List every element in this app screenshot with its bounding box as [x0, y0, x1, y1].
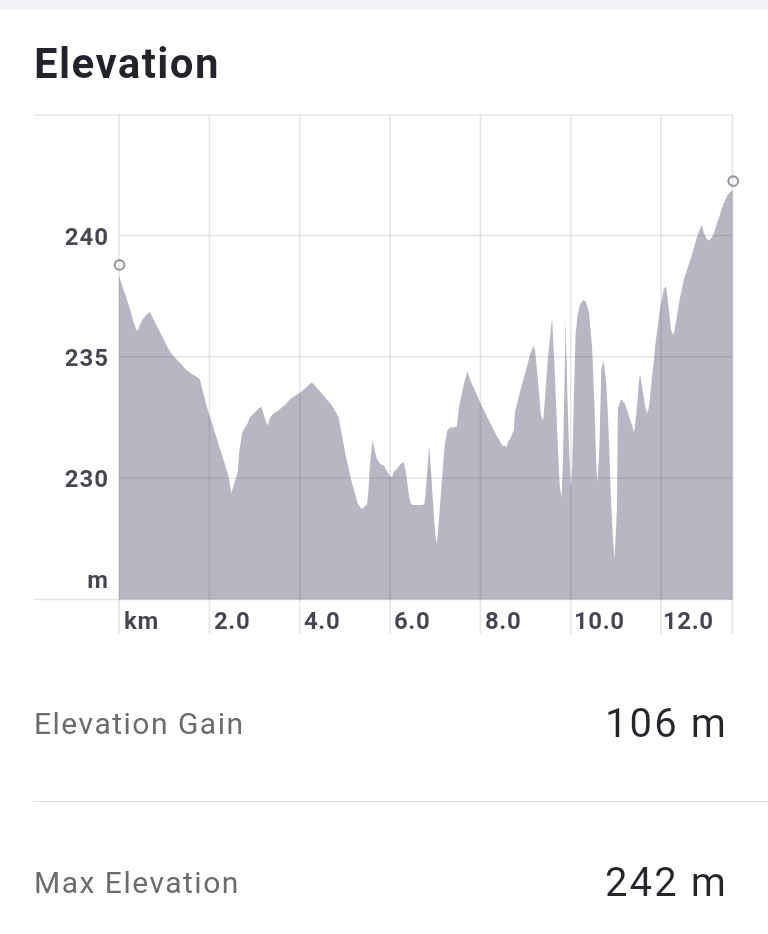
staticText: 106 m — [605, 700, 728, 747]
staticText: km — [124, 607, 159, 635]
button[interactable]: Max Elevation — [0, 822, 768, 914]
staticText: 10.0 — [574, 607, 625, 635]
staticText: 240 — [64, 223, 109, 251]
staticText: 8.0 — [485, 607, 522, 635]
staticText: 242 m — [605, 859, 728, 906]
staticText: 6.0 — [394, 607, 431, 635]
staticText: Elevation Gain — [34, 706, 245, 741]
staticText: 230 — [64, 465, 109, 493]
staticText: m — [87, 566, 109, 594]
staticText: Elevation — [34, 39, 220, 88]
staticText: 4.0 — [304, 607, 341, 635]
button[interactable]: Elevation Gain — [0, 663, 768, 755]
staticText: 2.0 — [214, 607, 251, 635]
staticText: 235 — [64, 344, 109, 372]
staticText: 12.0 — [663, 607, 714, 635]
staticText: Max Elevation — [34, 865, 240, 900]
